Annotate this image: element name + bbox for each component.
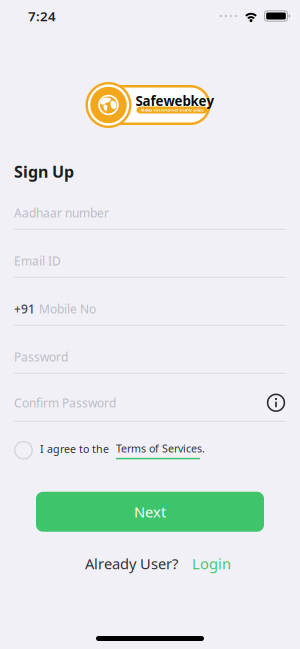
staticText: Login	[192, 554, 231, 573]
button[interactable]: Login	[192, 554, 231, 573]
staticText: Confirm Password	[14, 395, 116, 411]
button[interactable]: Password info	[266, 393, 286, 413]
staticText: 7:24	[28, 7, 56, 25]
staticText: Already User?	[85, 554, 178, 573]
staticText: Makes the internet a safer place	[140, 107, 203, 113]
staticText: Email ID	[14, 253, 61, 269]
staticText: Terms of Services.	[116, 441, 205, 455]
staticText: Password	[14, 349, 68, 365]
staticText: Safewebkey	[135, 92, 214, 110]
staticText: +91	[14, 301, 35, 317]
staticText: Sign Up	[14, 161, 74, 182]
button[interactable]: Next	[36, 492, 264, 532]
staticText: Mobile No	[39, 301, 96, 317]
staticText: I agree to the	[40, 442, 109, 456]
button[interactable]: Agree to terms	[14, 441, 33, 460]
staticText: Aadhaar number	[14, 205, 109, 221]
staticText: Next	[134, 502, 166, 521]
button[interactable]: Terms of Services.	[116, 441, 205, 459]
